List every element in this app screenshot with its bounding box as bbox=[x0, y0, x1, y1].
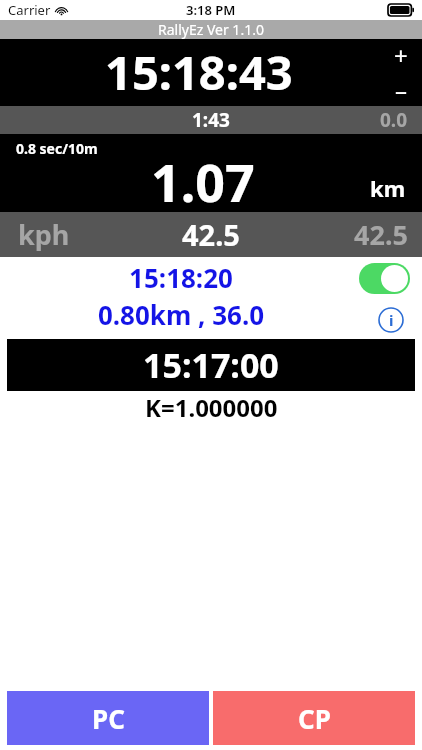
staticText: 0.80km , 36.0 bbox=[0, 297, 362, 332]
staticText: 1.07 bbox=[151, 146, 255, 217]
button[interactable]: Decrease bbox=[381, 73, 421, 106]
staticText: 15:18:20 bbox=[0, 260, 362, 295]
staticText: RallyEz Ver 1.1.0 bbox=[158, 20, 264, 39]
staticText: + bbox=[394, 39, 408, 72]
button[interactable]: PC bbox=[7, 691, 209, 745]
staticText: 15:18:43 bbox=[105, 40, 293, 104]
staticText: PC bbox=[92, 701, 125, 736]
staticText: km bbox=[370, 173, 406, 203]
staticText: 15:17:00 bbox=[143, 342, 279, 388]
staticText: 42.5 bbox=[182, 215, 240, 254]
staticText: i bbox=[389, 310, 394, 330]
staticText: 0.8 sec/10m bbox=[16, 139, 98, 158]
staticText: Carrier bbox=[8, 1, 51, 19]
button[interactable]: Increase bbox=[381, 39, 421, 72]
staticText: 42.5 bbox=[354, 216, 408, 253]
staticText: K=1.000000 bbox=[145, 391, 278, 423]
button[interactable]: Toggle bbox=[359, 263, 410, 294]
button[interactable]: CP bbox=[213, 691, 415, 745]
button[interactable]: Info bbox=[378, 307, 404, 333]
staticText: 1:43 bbox=[192, 107, 230, 133]
staticText: – bbox=[395, 73, 407, 106]
staticText: kph bbox=[18, 216, 70, 253]
staticText: 0.0 bbox=[380, 107, 408, 133]
staticText: 3:18 PM bbox=[186, 1, 236, 19]
staticText: CP bbox=[298, 701, 331, 736]
